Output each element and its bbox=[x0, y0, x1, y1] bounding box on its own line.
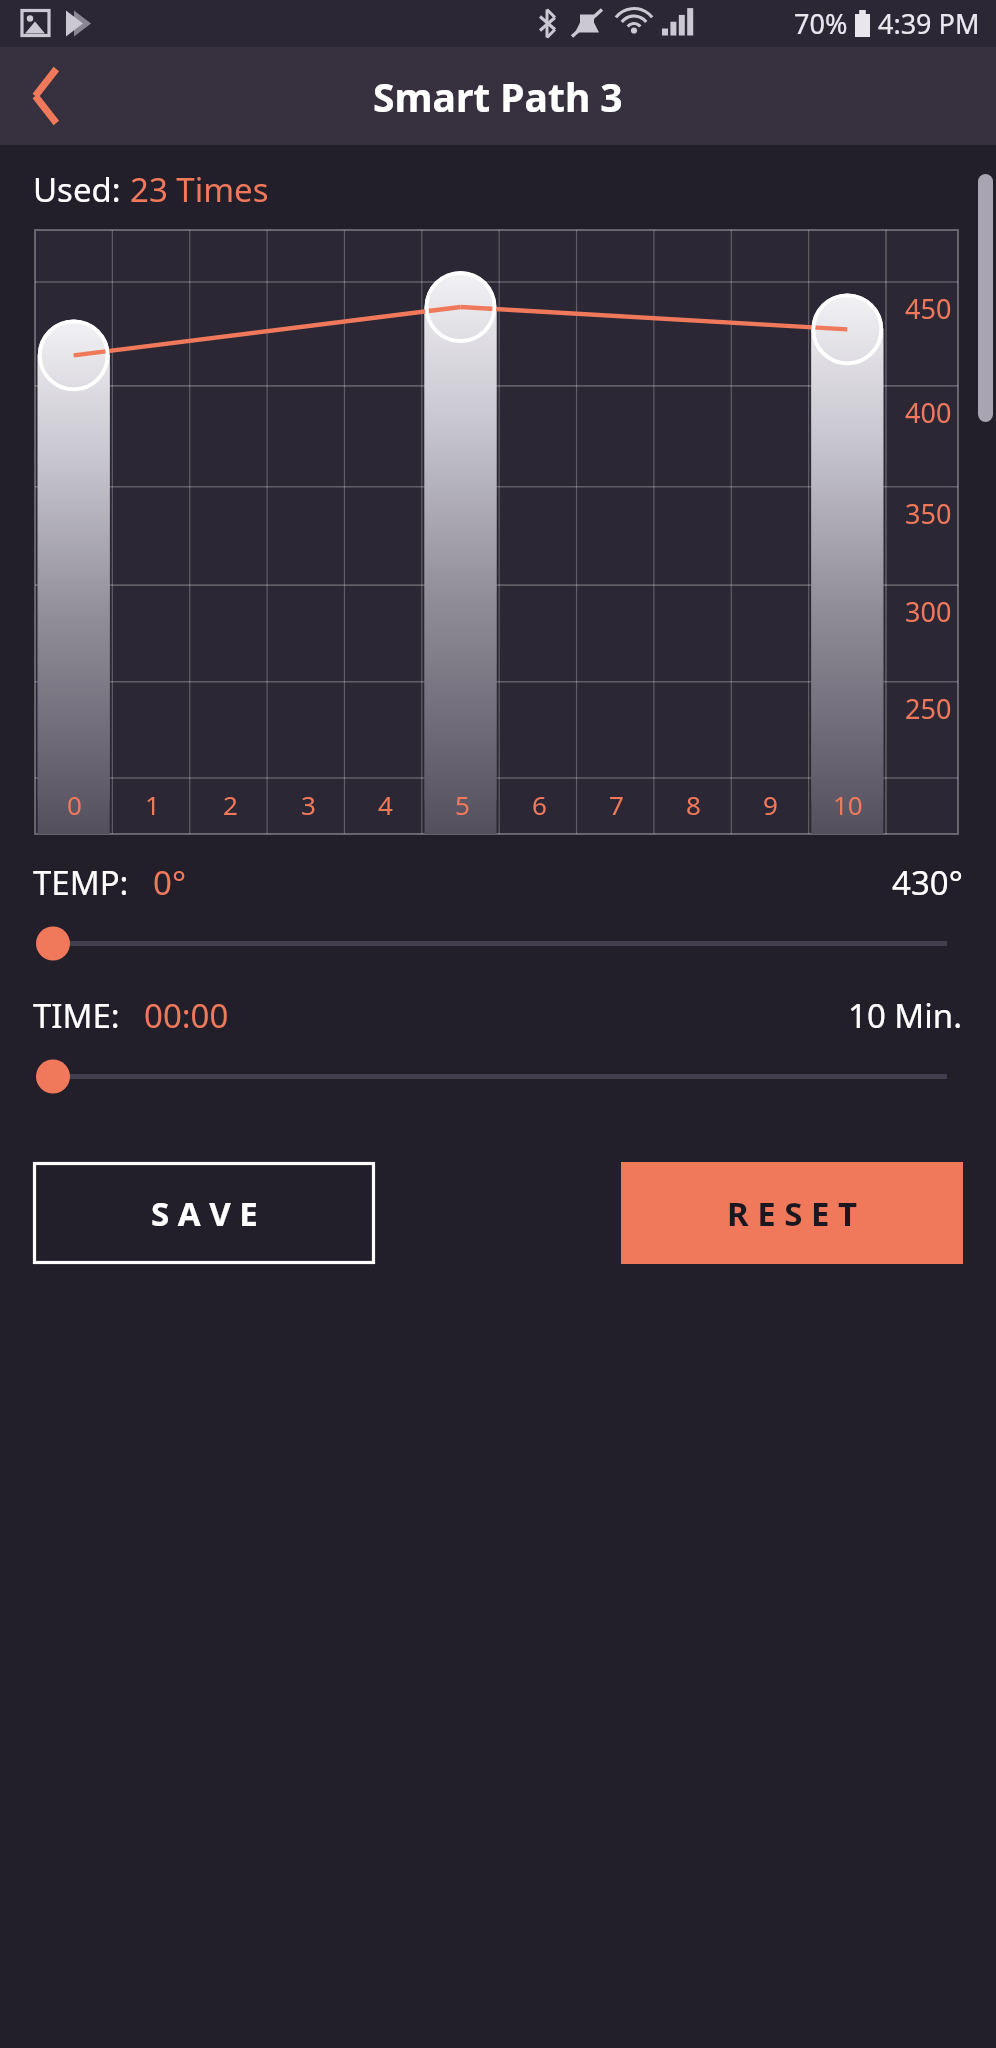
staticText: 9 bbox=[763, 787, 778, 822]
staticText: 10 Min. bbox=[848, 993, 963, 1038]
staticText: 7 bbox=[609, 787, 624, 822]
button[interactable]: Back bbox=[0, 53, 86, 139]
staticText: 430° bbox=[892, 860, 963, 905]
staticText: 70% bbox=[794, 5, 848, 42]
staticText: 400 bbox=[905, 394, 952, 431]
staticText: 2 bbox=[223, 787, 238, 822]
staticText: 00:00 bbox=[144, 993, 229, 1038]
staticText: 250 bbox=[905, 690, 952, 727]
staticText: 3 bbox=[301, 787, 316, 822]
staticText: 23 Times bbox=[130, 167, 269, 212]
button[interactable]: R E S E T bbox=[621, 1162, 963, 1264]
staticText: 5 bbox=[455, 787, 470, 822]
staticText: 300 bbox=[905, 593, 952, 630]
staticText: S A V E bbox=[151, 1191, 258, 1236]
staticText: TIME: bbox=[33, 993, 120, 1038]
staticText: Used: bbox=[33, 167, 130, 212]
button[interactable]: S A V E bbox=[33, 1162, 375, 1264]
staticText: 6 bbox=[532, 787, 547, 822]
staticText: 1 bbox=[145, 787, 160, 822]
staticText: 350 bbox=[905, 495, 952, 532]
button[interactable] bbox=[33, 1038, 963, 1100]
staticText: R E S E T bbox=[727, 1191, 858, 1236]
staticText: 10 bbox=[833, 787, 863, 822]
staticText: Smart Path 3 bbox=[373, 70, 623, 123]
staticText: TEMP: bbox=[33, 860, 129, 905]
staticText: 0° bbox=[153, 860, 186, 905]
button[interactable] bbox=[33, 905, 963, 967]
staticText: 450 bbox=[905, 290, 952, 327]
staticText: 4:39 PM bbox=[878, 5, 980, 42]
staticText: 8 bbox=[686, 787, 701, 822]
staticText: 4 bbox=[378, 787, 393, 822]
staticText: 0 bbox=[67, 787, 82, 822]
